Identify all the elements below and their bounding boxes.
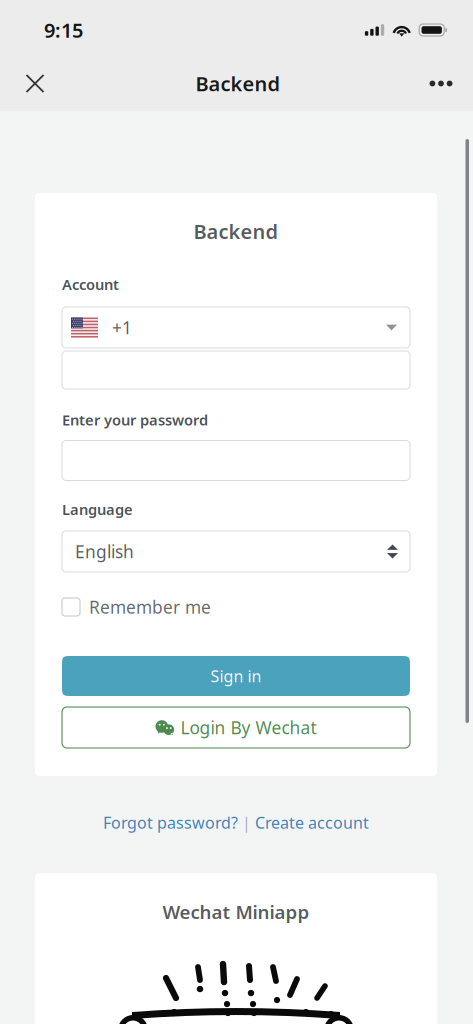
staticText: Create account [255,812,369,833]
button[interactable]: English [62,531,410,572]
button[interactable]: Close [13,61,57,105]
staticText: Backend [195,70,280,97]
staticText: +1 [112,316,132,339]
staticText: Language [62,499,133,519]
staticText: Wechat Miniapp [162,899,309,924]
button[interactable]: Sign in [62,656,410,696]
button[interactable]: More options [419,61,463,105]
button[interactable]: Login By Wechat [62,707,410,748]
staticText: English [75,540,134,563]
button[interactable]: +1 [62,307,410,348]
button[interactable]: Remember me [62,598,410,616]
staticText: Enter your password [62,410,208,429]
staticText: Sign in [210,665,261,687]
staticText: Backend [193,218,278,245]
staticText: Remember me [89,595,211,618]
staticText: Login By Wechat [180,716,316,739]
button[interactable]: Forgot password? [103,812,238,833]
staticText: 9:15 [44,17,83,43]
staticText: Account [62,275,119,294]
button[interactable]: Create account [255,812,369,833]
staticText: | [238,812,255,833]
staticText: Forgot password? [103,812,238,833]
